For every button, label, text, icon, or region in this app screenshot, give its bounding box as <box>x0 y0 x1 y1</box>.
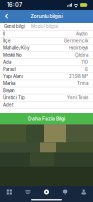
staticText: Yeni Tesis <box>67 95 88 100</box>
staticText: Modül bilgisi <box>31 24 58 29</box>
button[interactable]: Profile <box>74 187 93 196</box>
button[interactable]: Adet <box>0 101 93 109</box>
staticText: Üretici Tip <box>3 95 25 100</box>
staticText: Hıdırbeyli <box>69 45 88 51</box>
staticText: 16:07 <box>7 2 22 8</box>
staticText: Marka <box>3 81 15 86</box>
staticText: Adet <box>3 102 13 107</box>
staticText: İl <box>3 31 5 36</box>
button[interactable]: Dashboard <box>0 187 19 196</box>
staticText: 6 <box>85 67 88 72</box>
staticText: 21.98 M² <box>69 74 88 79</box>
button[interactable]: İlçe <box>0 38 93 45</box>
button[interactable]: Parsel <box>0 66 93 73</box>
staticText: Zorunlu bilgisi <box>30 13 62 19</box>
button[interactable]: Daha Fazla Bilgi <box>0 113 93 124</box>
button[interactable]: Beyan <box>0 87 93 94</box>
staticText: Trina <box>77 81 88 86</box>
button[interactable]: Yapı Alanı <box>0 73 93 80</box>
button[interactable]: Map <box>37 187 56 196</box>
button[interactable]: Mevkii No <box>0 52 93 59</box>
staticText: Beyan <box>3 88 15 93</box>
button[interactable]: Marka <box>0 80 93 87</box>
staticText: 110 <box>81 59 88 65</box>
button[interactable]: Reports <box>19 187 37 196</box>
staticText: Yapı Alanı <box>3 74 23 79</box>
staticText: Mahalle/Köy <box>3 45 29 51</box>
staticText: Aydın <box>76 31 88 36</box>
button[interactable]: Genel bilgi <box>3 24 26 29</box>
button[interactable]: Ada <box>0 59 93 66</box>
staticText: Mevkii No <box>3 52 22 58</box>
staticText: Daha Fazla Bilgi <box>28 116 65 122</box>
staticText: Ada <box>3 59 11 65</box>
button[interactable]: Back <box>2 12 11 21</box>
staticText: Germencik <box>64 38 88 43</box>
button[interactable]: Alerts <box>56 187 74 196</box>
staticText: Parsel <box>3 67 16 72</box>
button[interactable]: Mahalle/Köy <box>0 45 93 52</box>
button[interactable]: Modül bilgisi <box>30 24 59 29</box>
button[interactable]: İl <box>0 30 93 38</box>
staticText: İlçe <box>3 38 11 43</box>
button[interactable]: Üretici Tip <box>0 94 93 101</box>
staticText: Çıldıra <box>75 52 88 58</box>
staticText: Genel bilgi <box>4 24 25 29</box>
